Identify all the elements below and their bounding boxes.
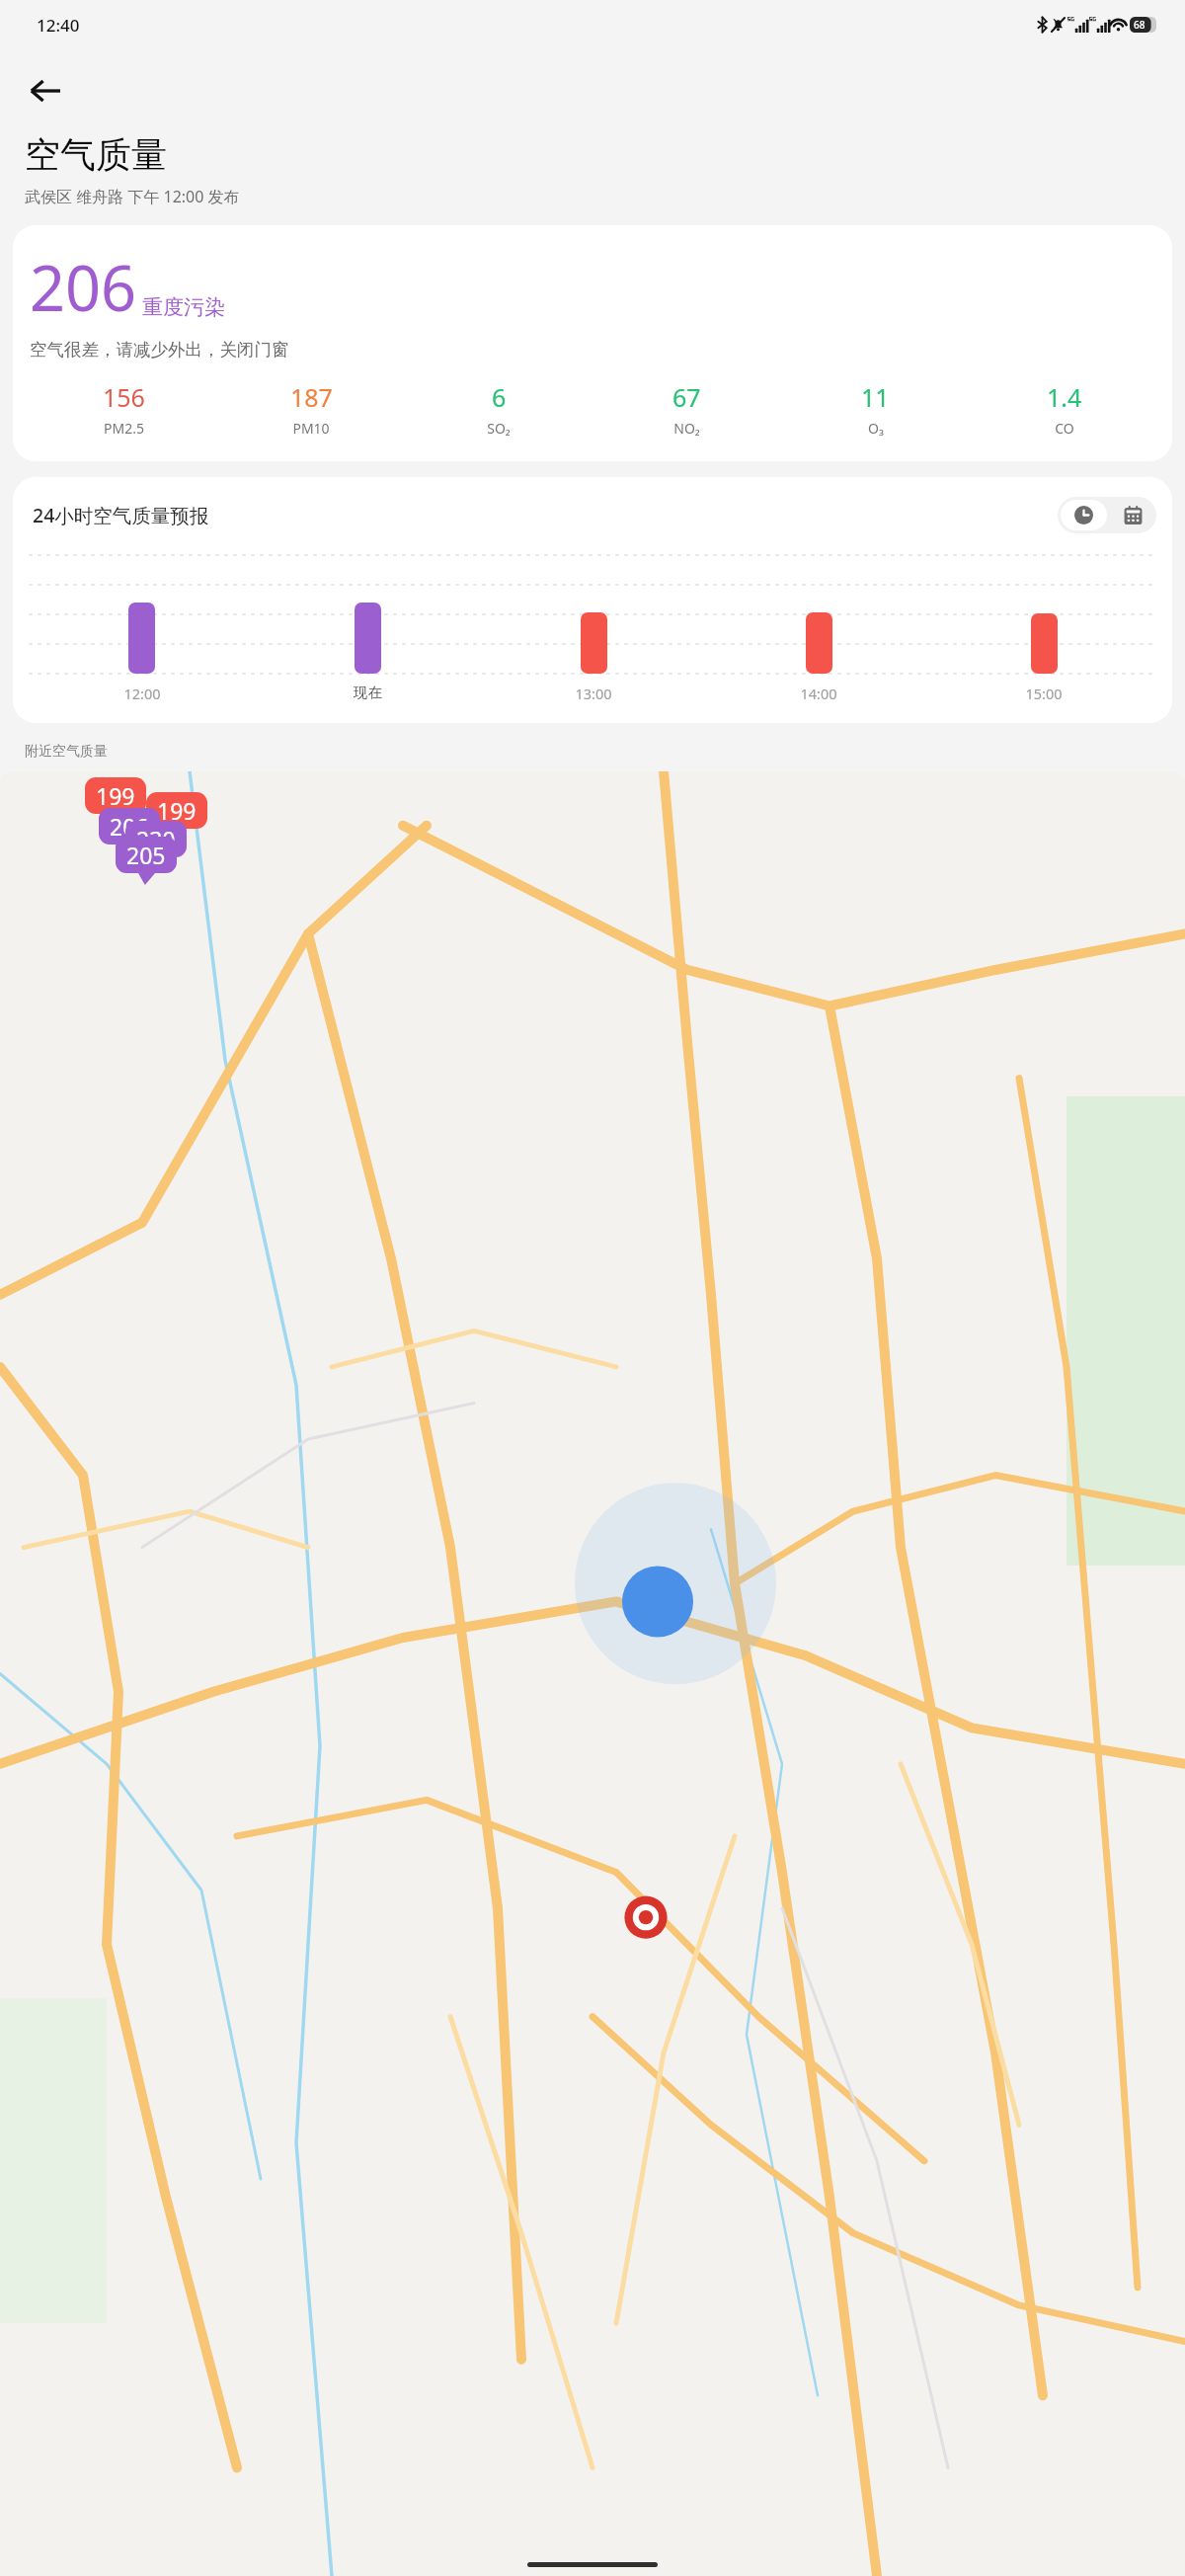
staticText: 156 <box>103 380 145 414</box>
button[interactable]: 199 <box>146 792 207 829</box>
staticText: 68 <box>1134 18 1145 32</box>
staticText: 205 <box>126 840 166 870</box>
staticText: 67 <box>672 380 701 414</box>
staticText: 6 <box>492 380 507 414</box>
staticText: 13:00 <box>575 684 612 703</box>
staticText: 12:40 <box>37 14 80 37</box>
staticText: 206 <box>110 811 149 842</box>
staticText: 230 <box>136 824 176 854</box>
staticText: 重度污染 <box>142 294 225 320</box>
staticText: 空气质量 <box>25 132 167 177</box>
button[interactable]: 206 <box>13 225 1172 461</box>
button[interactable]: 205 <box>116 837 177 873</box>
staticText: 1.4 <box>1047 380 1082 414</box>
staticText: 现在 <box>354 684 382 701</box>
staticText: 12:00 <box>123 684 161 703</box>
staticText: SO₂ <box>487 419 511 438</box>
staticText: 206 <box>30 245 137 330</box>
staticText: 199 <box>157 795 197 826</box>
staticText: 199 <box>96 780 135 811</box>
staticText: 187 <box>290 380 333 414</box>
staticText: 空气很差，请减少外出，关闭门窗 <box>30 339 289 361</box>
staticText: 11 <box>861 380 890 414</box>
button[interactable]: Daily forecast <box>1110 500 1156 530</box>
staticText: 附近空气质量 <box>25 743 108 761</box>
staticText: 武侯区 维舟路 下午 12:00 发布 <box>25 186 240 207</box>
staticText: 14:00 <box>800 684 837 703</box>
button[interactable]: 230 <box>125 821 187 857</box>
staticText: PM2.5 <box>104 419 144 438</box>
button[interactable]: Nearby air quality map <box>0 771 1185 2576</box>
button[interactable]: 199 <box>85 777 146 814</box>
staticText: 24小时空气质量预报 <box>33 502 209 528</box>
button[interactable]: Hourly forecast <box>1061 500 1107 530</box>
staticText: PM10 <box>292 419 330 438</box>
staticText: NO₂ <box>673 419 700 438</box>
staticText: CO <box>1055 419 1074 438</box>
staticText: O₃ <box>868 419 884 438</box>
staticText: 15:00 <box>1025 684 1063 703</box>
button[interactable]: Back <box>20 65 71 117</box>
button[interactable]: 206 <box>99 808 160 845</box>
